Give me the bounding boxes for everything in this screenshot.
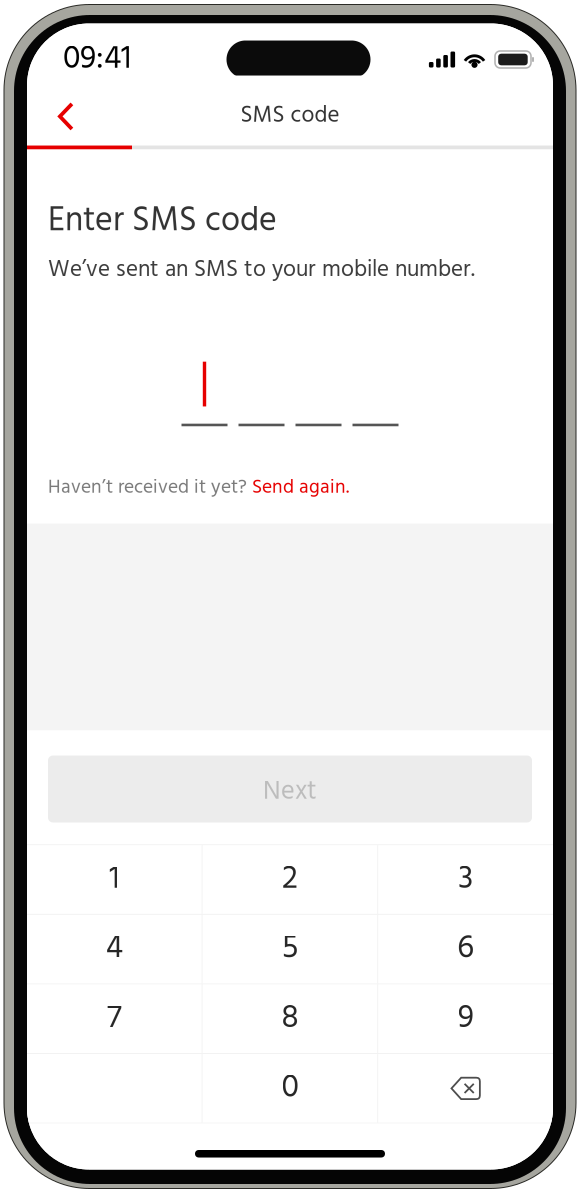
staticText: 4	[106, 924, 123, 975]
staticText: Enter SMS code	[48, 194, 277, 249]
button[interactable]: 1	[27, 845, 202, 914]
button[interactable]: Next	[48, 755, 532, 822]
button[interactable]: 4	[27, 915, 202, 983]
button[interactable]: 2	[203, 845, 377, 914]
button[interactable]: 3	[378, 845, 553, 914]
staticText: Haven’t received it yet?	[48, 472, 252, 503]
button[interactable]: Back	[27, 76, 98, 145]
button[interactable]: Send again.	[252, 472, 349, 503]
button[interactable]: 9	[378, 984, 553, 1053]
button[interactable]: 5	[203, 915, 377, 983]
staticText: 3	[458, 854, 473, 905]
staticText: 7	[107, 993, 121, 1044]
button[interactable]: 7	[27, 984, 202, 1053]
staticText: Next	[263, 771, 317, 813]
button[interactable]: 0	[203, 1054, 377, 1123]
staticText: 8	[281, 993, 298, 1044]
staticText: Send again.	[252, 472, 349, 503]
staticText: 5	[282, 924, 298, 975]
staticText: 09:41	[63, 34, 131, 85]
staticText: SMS code	[240, 98, 339, 134]
button[interactable]: 6	[378, 915, 553, 983]
staticText: 6	[457, 924, 474, 975]
staticText: 2	[282, 854, 298, 905]
staticText: 9	[458, 993, 474, 1044]
staticText: 0	[281, 1063, 298, 1114]
staticText: 1	[109, 854, 119, 905]
button[interactable]: 8	[203, 984, 377, 1053]
staticText: We’ve sent an SMS to your mobile number.	[48, 252, 475, 289]
button[interactable]: Delete	[378, 1054, 553, 1123]
